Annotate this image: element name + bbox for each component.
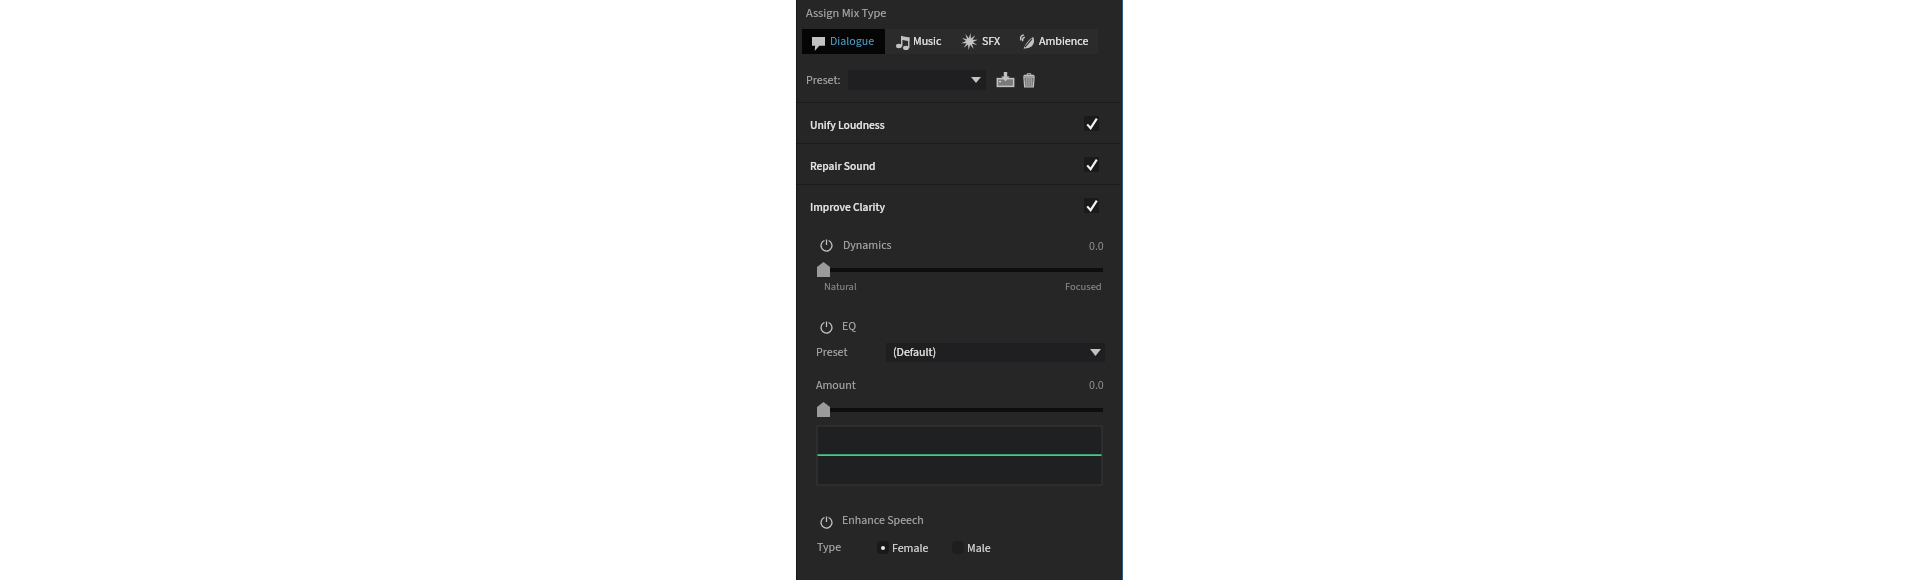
staticText: Enhance Speech	[842, 512, 924, 529]
staticText: Unify Loudness	[810, 117, 885, 133]
button[interactable]: Repair Sound	[796, 143, 1123, 184]
staticText: 0.0	[1089, 377, 1104, 394]
button[interactable]: Toggle Enhance Speech	[819, 515, 833, 529]
button[interactable]: Ambience	[1009, 29, 1098, 54]
staticText: Female	[892, 540, 929, 554]
button[interactable]: Improve Clarity	[796, 184, 1123, 225]
button[interactable]: Female	[877, 540, 929, 554]
staticText: EQ	[842, 318, 857, 335]
staticText: Music	[913, 33, 942, 50]
button[interactable]	[802, 29, 885, 54]
staticText: Amount	[816, 377, 856, 394]
button[interactable]: SFX	[951, 29, 1009, 54]
staticText: Natural	[824, 279, 857, 294]
button[interactable]: Toggle EQ	[819, 320, 833, 334]
button[interactable]: Preset dropdown	[848, 70, 986, 90]
button[interactable]: Dialogue	[802, 29, 885, 54]
button[interactable]: Music	[885, 29, 951, 54]
staticText: Repair Sound	[810, 158, 876, 174]
button[interactable]: Unify Loudness	[796, 102, 1123, 143]
button[interactable]: Dynamics amount	[817, 262, 1103, 277]
button[interactable]: Save preset	[995, 69, 1015, 89]
button[interactable]: EQ amount	[817, 402, 1103, 417]
button[interactable]: Male	[952, 540, 991, 554]
staticText: Dynamics	[843, 237, 892, 254]
staticText: Type	[817, 539, 842, 556]
button[interactable]: EQ curve	[817, 426, 1102, 485]
staticText: Male	[967, 540, 991, 554]
staticText: Preset	[816, 344, 848, 361]
staticText: Ambience	[1039, 33, 1089, 50]
staticText: Focused	[1065, 279, 1102, 294]
button[interactable]: Toggle Dynamics	[819, 238, 833, 252]
staticText: Dialogue	[830, 33, 875, 50]
staticText: Assign Mix Type	[806, 4, 887, 22]
button[interactable]: EQ preset dropdown	[886, 343, 1105, 362]
staticText: (Default)	[893, 344, 937, 361]
button[interactable]: Delete preset	[1019, 70, 1039, 90]
staticText: Preset:	[806, 72, 841, 89]
staticText: 0.0	[1089, 238, 1104, 255]
staticText: Improve Clarity	[810, 199, 886, 215]
staticText: SFX	[982, 33, 1001, 50]
